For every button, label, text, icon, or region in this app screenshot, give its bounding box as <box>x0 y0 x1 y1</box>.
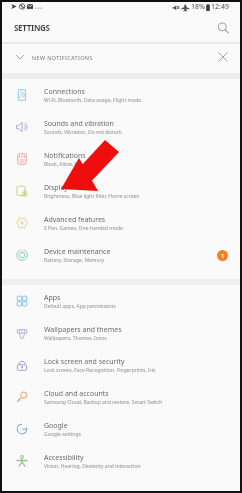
staticText: Lock screen and security <box>44 357 125 367</box>
staticText: Default apps, App permissions <box>44 303 116 310</box>
staticText: Connections <box>44 87 85 97</box>
button[interactable]: Sounds and vibration <box>2 111 240 143</box>
staticText: Apps <box>44 293 61 303</box>
button[interactable]: Display <box>2 175 240 207</box>
staticText: Wallpapers and themes <box>44 325 122 335</box>
staticText: S Pen, Games, One-handed mode <box>44 225 123 232</box>
button[interactable]: Wallpapers and themes <box>2 317 240 349</box>
staticText: Block, Allow, Prioritise <box>44 161 96 168</box>
button[interactable]: Accessibility <box>2 445 240 477</box>
button[interactable]: Apps <box>2 285 240 317</box>
staticText: Cloud and accounts <box>44 389 109 399</box>
staticText: Google <box>44 421 68 431</box>
staticText: Notifications <box>44 151 86 161</box>
staticText: Display <box>44 183 68 193</box>
staticText: 18% <box>191 2 205 12</box>
staticText: 12:49 <box>211 2 229 12</box>
staticText: 1 <box>221 252 225 260</box>
button[interactable]: Search <box>214 19 233 38</box>
staticText: Vision, Hearing, Dexterity and interacti… <box>44 463 141 470</box>
staticText: Device maintenance <box>44 247 111 257</box>
staticText: SETTINGS <box>14 22 50 33</box>
staticText: NEW NOTIFICATIONS <box>32 54 93 61</box>
button[interactable]: SETTINGS <box>14 22 50 33</box>
staticText: Brightness, Blue light filter, Home scre… <box>44 193 140 200</box>
staticText: Wi-Fi, Bluetooth, Data usage, Flight mod… <box>44 97 142 104</box>
staticText: Sounds, Vibration, Do not disturb <box>44 129 123 136</box>
staticText: Google settings <box>44 431 81 438</box>
button[interactable]: Device maintenance <box>2 239 240 271</box>
button[interactable]: Lock screen and security <box>2 349 240 381</box>
staticText: Advanced features <box>44 215 106 225</box>
button[interactable]: Connections <box>2 79 240 111</box>
staticText: Accessibility <box>44 453 84 463</box>
button[interactable]: Cloud and accounts <box>2 381 240 413</box>
button[interactable]: Google <box>2 413 240 445</box>
staticText: Lock screen, Face Recognition, Fingerpri… <box>44 367 156 374</box>
button[interactable]: Close <box>215 49 231 65</box>
staticText: Sounds and vibration <box>44 119 114 129</box>
staticText: Samsung Cloud, Backup and restore, Smart… <box>44 399 163 406</box>
button[interactable]: NEW NOTIFICATIONS <box>2 44 240 73</box>
button[interactable]: Notifications <box>2 143 240 175</box>
button[interactable]: Advanced features <box>2 207 240 239</box>
staticText: Wallpapers, Themes, Icons <box>44 335 107 342</box>
staticText: Battery, Storage, Memory <box>44 257 105 264</box>
